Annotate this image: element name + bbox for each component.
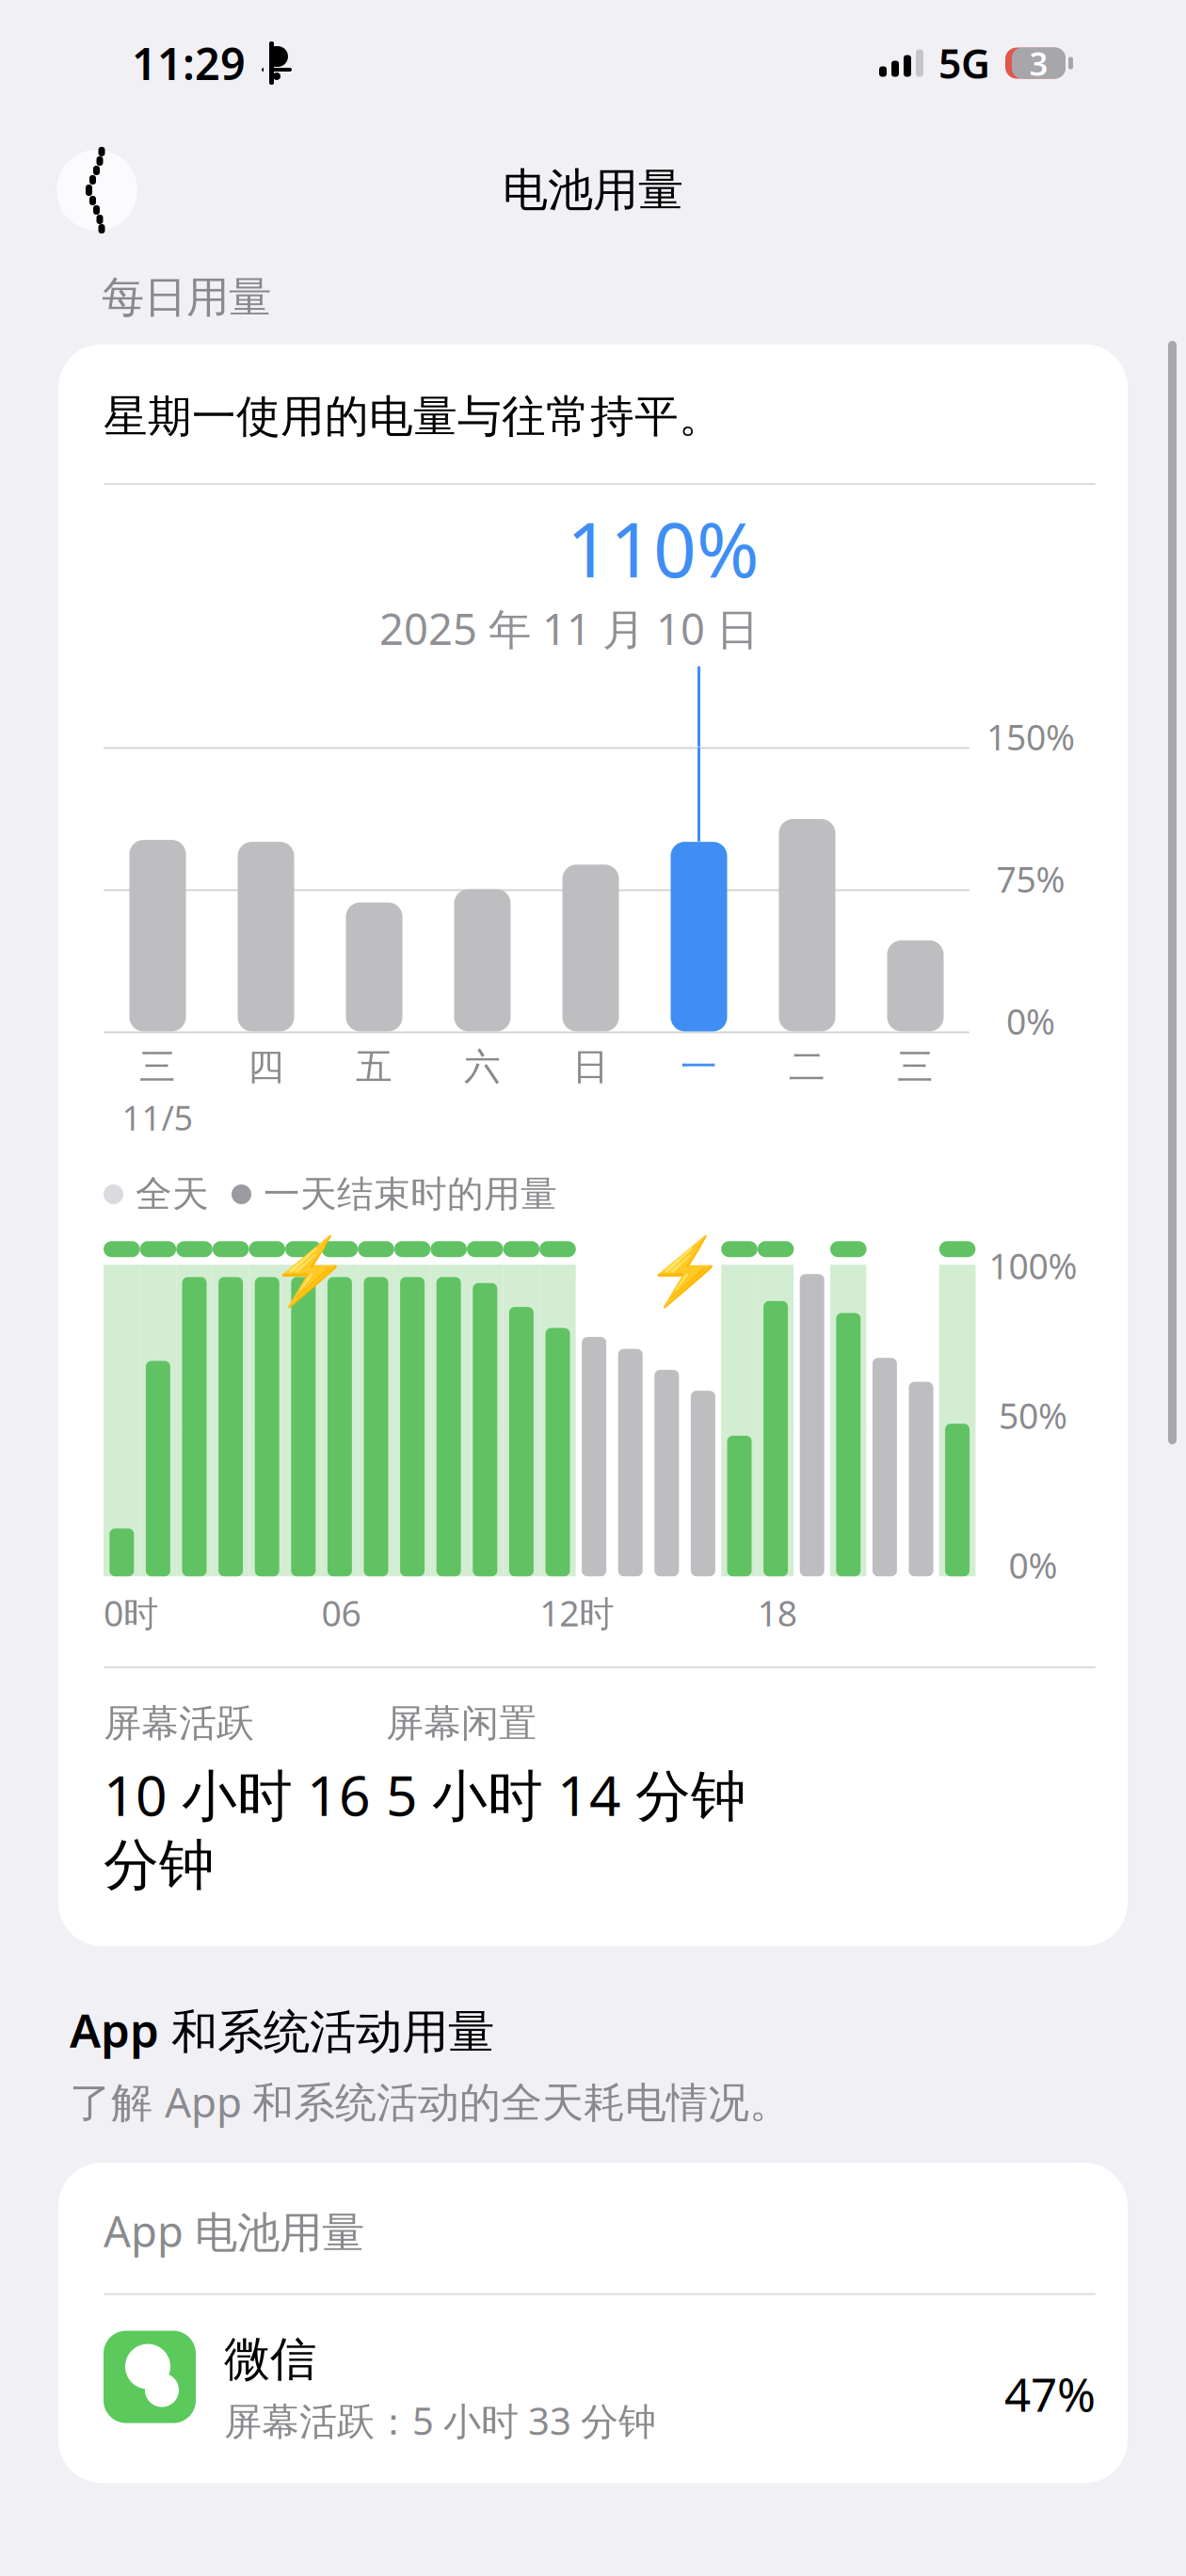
staticText: 5G bbox=[938, 36, 990, 90]
staticText: 0% bbox=[1006, 998, 1055, 1044]
staticText: ⚡ bbox=[656, 1244, 715, 1299]
staticText: 六 bbox=[464, 1045, 501, 1089]
staticText: App 和系统活动用量 bbox=[70, 1999, 494, 2061]
staticText: 50% bbox=[999, 1392, 1067, 1439]
staticText: 100% bbox=[989, 1242, 1077, 1289]
button[interactable]: 微信 bbox=[104, 2295, 1096, 2483]
staticText: 11:29 bbox=[132, 34, 246, 92]
staticText: 10 小时 16 分钟 bbox=[104, 1758, 371, 1899]
staticText: 三 bbox=[139, 1045, 176, 1089]
staticText: ⚡ bbox=[269, 1234, 350, 1309]
staticText: 四 bbox=[248, 1045, 284, 1089]
staticText: 5 小时 14 分钟 bbox=[386, 1758, 746, 1831]
staticText: 150% bbox=[986, 713, 1075, 760]
staticText: 全天 bbox=[136, 1172, 209, 1217]
staticText: 屏幕活跃 bbox=[104, 1700, 254, 1746]
staticText: 18 bbox=[758, 1589, 797, 1636]
staticText: 0% bbox=[1008, 1542, 1057, 1588]
staticText: 屏幕闲置 bbox=[386, 1700, 537, 1746]
staticText: 二 bbox=[789, 1045, 825, 1089]
staticText: 110% bbox=[567, 498, 759, 598]
staticText: 电池用量 bbox=[503, 162, 683, 218]
staticText: 星期一使用的电量与往常持平。 bbox=[104, 390, 723, 443]
staticText: 一天结束时的用量 bbox=[264, 1172, 557, 1217]
staticText: 12时 bbox=[540, 1589, 614, 1636]
staticText: 0时 bbox=[104, 1589, 158, 1636]
staticText: 75% bbox=[996, 855, 1065, 902]
staticText: 屏幕活跃：5 小时 33 分钟 bbox=[224, 2395, 656, 2445]
staticText: 一 bbox=[681, 1045, 717, 1089]
staticText: 三 bbox=[897, 1045, 934, 1089]
staticText: 2025 年 11 月 10 日 bbox=[379, 600, 759, 657]
button[interactable]: 返回 bbox=[56, 150, 137, 231]
staticText: 了解 App 和系统活动的全天耗电情况。 bbox=[70, 2074, 791, 2129]
staticText: 每日用量 bbox=[102, 271, 271, 324]
staticText: 日 bbox=[572, 1045, 609, 1089]
staticText: 11/5 bbox=[122, 1095, 193, 1140]
staticText: 47% bbox=[1004, 2363, 1096, 2424]
staticText: 五 bbox=[356, 1045, 393, 1089]
staticText: 3 bbox=[1029, 41, 1048, 85]
staticText: ⚡ bbox=[645, 1234, 726, 1309]
staticText: 06 bbox=[322, 1589, 361, 1636]
staticText: ⚡ bbox=[280, 1244, 339, 1299]
staticText: 微信 bbox=[224, 2331, 316, 2388]
staticText: App 电池用量 bbox=[104, 2202, 364, 2259]
